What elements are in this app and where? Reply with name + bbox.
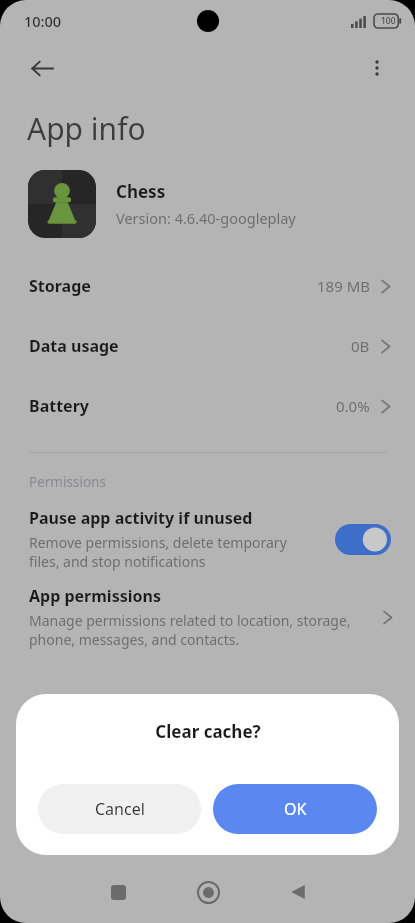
staticText: Storage bbox=[29, 275, 91, 297]
staticText: Chess bbox=[116, 180, 166, 203]
staticText: App permissions bbox=[29, 585, 161, 607]
staticText: 0.0% bbox=[336, 396, 370, 416]
button[interactable]: OK bbox=[213, 784, 377, 834]
button[interactable]: Cancel bbox=[38, 784, 201, 834]
staticText: Clear cache? bbox=[155, 720, 261, 743]
button[interactable]: Back bbox=[18, 44, 66, 92]
button[interactable]: Pause app activity if unused bbox=[0, 505, 415, 573]
staticText: Permissions bbox=[29, 473, 106, 491]
button[interactable]: Recent apps bbox=[96, 870, 140, 914]
button[interactable]: Data usage bbox=[0, 316, 415, 376]
button[interactable]: App permissions bbox=[0, 585, 415, 649]
button[interactable]: Pause app activity toggle bbox=[335, 524, 391, 555]
button[interactable]: Back bbox=[276, 870, 320, 914]
staticText: Manage permissions related to location, … bbox=[29, 611, 351, 649]
button[interactable]: Battery bbox=[0, 376, 415, 436]
button[interactable]: Home bbox=[186, 870, 230, 914]
button[interactable]: Storage bbox=[0, 256, 415, 316]
staticText: Cancel bbox=[95, 798, 145, 820]
staticText: Pause app activity if unused bbox=[29, 507, 253, 529]
staticText: 189 MB bbox=[317, 276, 370, 296]
staticText: Remove permissions, delete temporary fil… bbox=[29, 533, 287, 571]
staticText: 100 bbox=[381, 15, 396, 27]
button[interactable]: More options bbox=[353, 44, 401, 92]
staticText: 10:00 bbox=[24, 11, 62, 31]
staticText: App info bbox=[27, 108, 146, 149]
staticText: Data usage bbox=[29, 335, 119, 357]
staticText: 0B bbox=[351, 336, 370, 356]
staticText: Battery bbox=[29, 395, 89, 417]
staticText: Version: 4.6.40-googleplay bbox=[116, 208, 296, 228]
staticText: OK bbox=[284, 798, 307, 820]
